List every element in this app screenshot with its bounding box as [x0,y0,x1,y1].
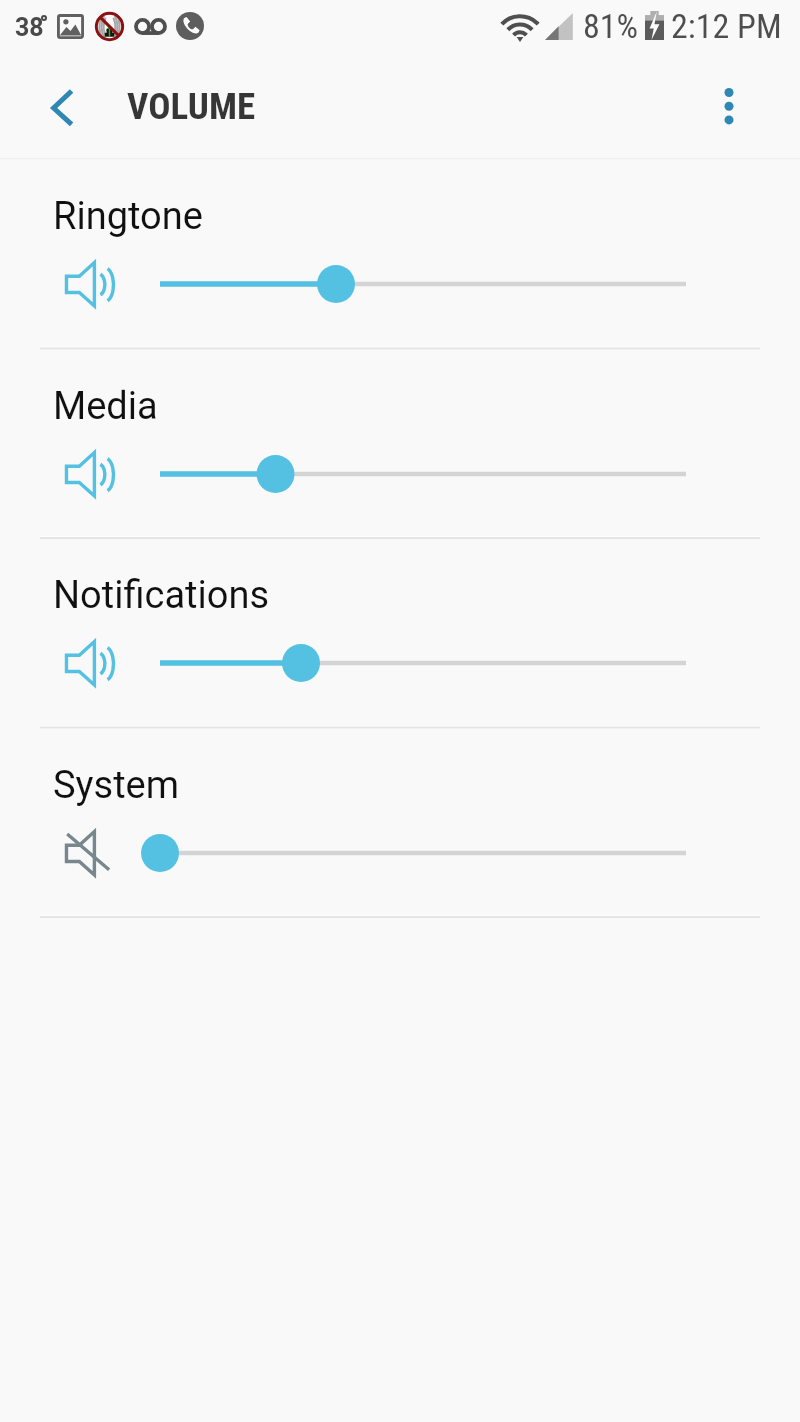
staticText: Media [53,384,158,429]
staticText: System [53,763,180,808]
staticText: VOLUME [127,85,256,128]
staticText: 81% [583,6,639,46]
button[interactable]: Notifications [0,537,800,727]
staticText: 2:12 PM [671,6,782,46]
button[interactable]: System [0,727,800,917]
staticText: Notifications [53,573,270,618]
button[interactable]: Media [0,348,800,538]
button[interactable]: Navigate up [28,75,94,141]
staticText: 38 [15,13,44,42]
staticText: Ringtone [53,194,203,239]
button[interactable]: Ringtone [0,158,800,348]
button[interactable]: More options [699,76,759,136]
